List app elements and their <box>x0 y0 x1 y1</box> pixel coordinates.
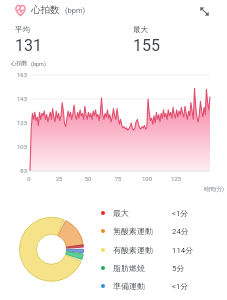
staticText: 143 <box>9 95 27 102</box>
staticText: 心拍数 <box>31 4 60 16</box>
button[interactable]: 有酸素運動 <box>101 243 206 256</box>
staticText: 有酸素運動 <box>113 245 153 255</box>
staticText: 準備運動 <box>113 281 145 291</box>
staticText: 時間(分) <box>192 186 224 193</box>
staticText: 114分 <box>172 245 193 255</box>
staticText: 125 <box>165 175 187 182</box>
staticText: (bpm) <box>31 61 46 67</box>
button[interactable]: Expand chart <box>195 2 213 20</box>
staticText: 83 <box>9 167 27 174</box>
staticText: 155 <box>133 36 160 55</box>
staticText: 脂肪燃焼 <box>113 263 145 273</box>
staticText: 103 <box>9 143 27 150</box>
staticText: 24分 <box>172 226 189 236</box>
button[interactable]: 準備運動 <box>101 279 206 292</box>
staticText: 0 <box>18 175 40 182</box>
staticText: 75 <box>107 175 129 182</box>
staticText: 50 <box>77 175 99 182</box>
staticText: 無酸素運動 <box>113 226 153 236</box>
staticText: 最大 <box>133 25 148 34</box>
staticText: 最大 <box>113 208 129 218</box>
staticText: <1分 <box>172 281 189 291</box>
staticText: 163 <box>9 71 27 78</box>
staticText: 心拍数 <box>11 60 28 67</box>
staticText: (bpm) <box>65 6 86 15</box>
staticText: 5分 <box>172 263 185 273</box>
button[interactable]: 最大 <box>101 206 206 219</box>
staticText: 123 <box>9 119 27 126</box>
staticText: <1分 <box>172 208 189 218</box>
staticText: 25 <box>48 175 70 182</box>
staticText: 100 <box>136 175 158 182</box>
button[interactable]: 心拍数 <box>15 4 86 16</box>
staticText: 平均 <box>15 25 30 34</box>
button[interactable]: 無酸素運動 <box>101 224 206 237</box>
staticText: 131 <box>15 36 42 55</box>
button[interactable]: 脂肪燃焼 <box>101 261 206 274</box>
